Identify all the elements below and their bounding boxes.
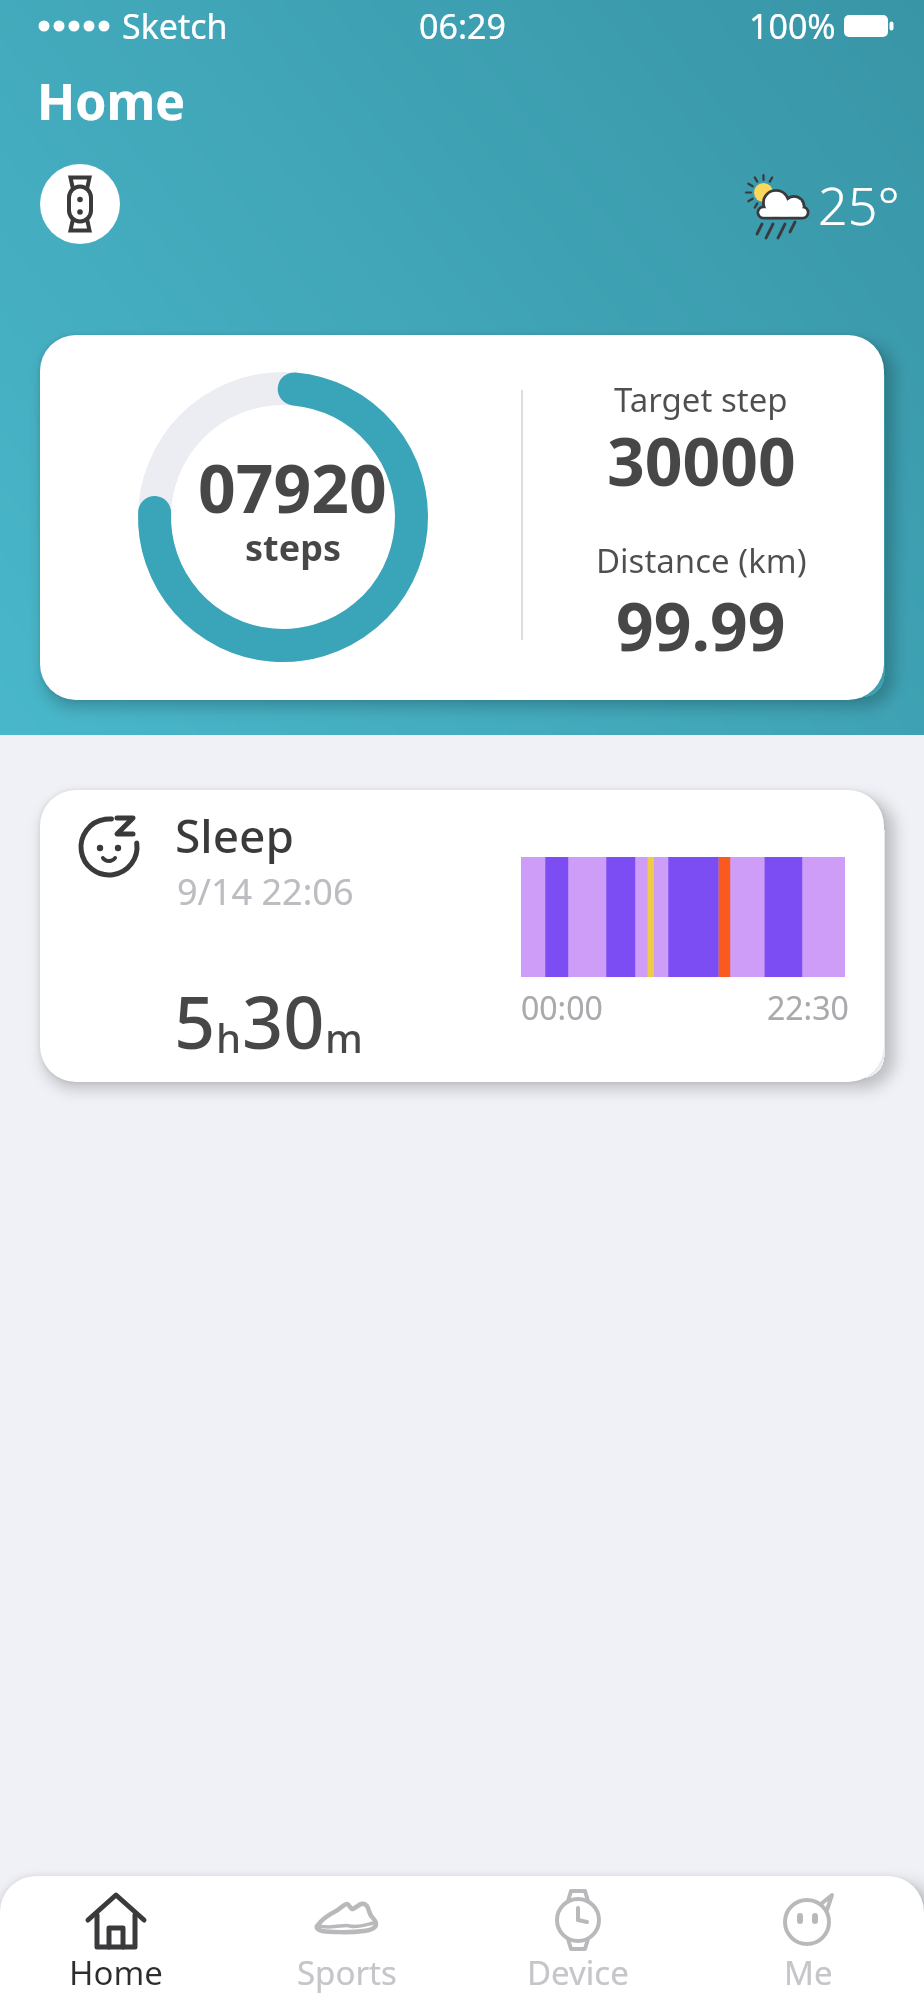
staticText: steps [245,523,342,572]
staticText: 30000 [607,415,796,505]
staticText: Distance (km) [596,538,807,583]
staticText: m [325,1010,363,1064]
staticText: 100% [749,3,836,49]
staticText: 06:29 [419,3,506,49]
button[interactable] [40,164,120,244]
staticText: Target step [614,377,788,422]
staticText: Sleep [175,804,295,867]
button[interactable]: Sports [231,1876,462,2000]
staticText: 00:00 [521,986,603,1030]
staticText: 07920 [198,442,387,532]
staticText: Sports [297,1950,397,1995]
staticText: Home [69,1950,163,1995]
staticText: 25° [818,169,900,240]
staticText: Sketch [122,3,228,49]
staticText: 5 [174,972,216,1070]
button[interactable]: 07920 [40,335,884,700]
staticText: Home [37,67,186,135]
staticText: Me [784,1950,833,1995]
staticText: h [216,1010,242,1064]
staticText: 30 [242,972,325,1070]
button[interactable]: Home [0,1876,231,2000]
button[interactable]: Sleep [40,790,884,1082]
staticText: 9/14 22:06 [177,867,354,916]
button[interactable]: Device [462,1876,693,2000]
staticText: 99.99 [616,580,786,670]
button[interactable]: Me [693,1876,924,2000]
staticText: 22:30 [767,986,849,1030]
staticText: Device [527,1950,629,1995]
